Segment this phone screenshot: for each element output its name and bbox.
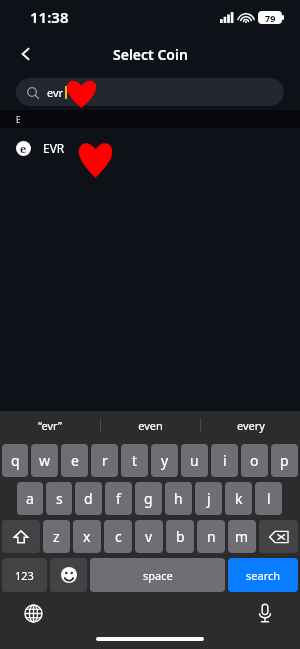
staticText: z [53, 527, 60, 546]
staticText: u [190, 451, 199, 470]
staticText: g [144, 489, 153, 508]
staticText: l [267, 489, 271, 508]
button[interactable]: r [91, 444, 118, 477]
staticText: p [280, 451, 289, 470]
button[interactable]: p [271, 444, 298, 477]
staticText: w [39, 451, 51, 470]
button[interactable]: m [228, 520, 256, 553]
staticText: n [207, 527, 216, 546]
button[interactable]: space [90, 558, 225, 592]
staticText: x [83, 527, 91, 546]
button[interactable]: x [73, 520, 101, 553]
button[interactable]: 123 [2, 558, 47, 592]
staticText: c [115, 527, 122, 546]
staticText: f [116, 489, 121, 508]
staticText: EVR [43, 140, 65, 156]
button[interactable]: “evr” [0, 411, 100, 439]
button[interactable]: Backspace [259, 520, 298, 553]
button[interactable]: evr [16, 78, 284, 106]
button[interactable]: c [104, 520, 132, 553]
staticText: o [250, 451, 259, 470]
button[interactable]: Back [8, 36, 44, 72]
button[interactable]: y [151, 444, 178, 477]
staticText: 123 [15, 568, 34, 583]
button[interactable]: Shift [2, 520, 40, 553]
staticText: “evr” [38, 418, 62, 433]
staticText: every [237, 418, 265, 433]
button[interactable]: v [135, 520, 163, 553]
button[interactable]: d [75, 482, 102, 515]
staticText: k [235, 489, 243, 508]
staticText: h [174, 489, 183, 508]
staticText: b [176, 527, 185, 546]
staticText: Select Coin [113, 45, 188, 64]
button[interactable]: e [0, 128, 300, 168]
staticText: even [138, 418, 163, 433]
staticText: y [161, 451, 169, 470]
staticText: e [71, 451, 79, 470]
staticText: t [132, 451, 138, 470]
staticText: e [20, 141, 27, 156]
staticText: 79 [265, 12, 276, 24]
button[interactable]: w [31, 444, 58, 477]
button[interactable]: h [165, 482, 192, 515]
staticText: d [84, 489, 93, 508]
staticText: i [223, 451, 227, 470]
button[interactable]: search [228, 558, 298, 592]
staticText: E [16, 114, 21, 125]
button[interactable]: z [43, 520, 70, 553]
staticText: v [145, 527, 153, 546]
button[interactable]: l [255, 482, 282, 515]
button[interactable]: q [2, 444, 28, 477]
staticText: m [235, 527, 249, 546]
staticText: evr [47, 85, 64, 100]
staticText: 11:38 [30, 7, 69, 27]
staticText: r [102, 451, 108, 470]
button[interactable]: k [225, 482, 252, 515]
staticText: q [11, 451, 20, 470]
button[interactable]: j [195, 482, 222, 515]
button[interactable]: i [211, 444, 238, 477]
staticText: j [207, 489, 211, 508]
button[interactable]: n [197, 520, 225, 553]
button[interactable]: t [121, 444, 148, 477]
button[interactable]: Emoji [50, 558, 87, 592]
button[interactable]: Voice input [252, 600, 278, 626]
staticText: search [246, 568, 281, 583]
button[interactable]: g [135, 482, 162, 515]
button[interactable]: f [105, 482, 132, 515]
button[interactable]: b [166, 520, 194, 553]
button[interactable]: o [241, 444, 268, 477]
staticText: s [56, 489, 63, 508]
button[interactable]: a [17, 482, 43, 515]
button[interactable]: s [46, 482, 72, 515]
staticText: space [143, 568, 173, 583]
button[interactable]: u [181, 444, 208, 477]
staticText: a [26, 489, 34, 508]
button[interactable]: Change keyboard [20, 600, 46, 626]
button[interactable]: every [201, 411, 300, 439]
button[interactable]: even [101, 411, 200, 439]
button[interactable]: e [61, 444, 88, 477]
